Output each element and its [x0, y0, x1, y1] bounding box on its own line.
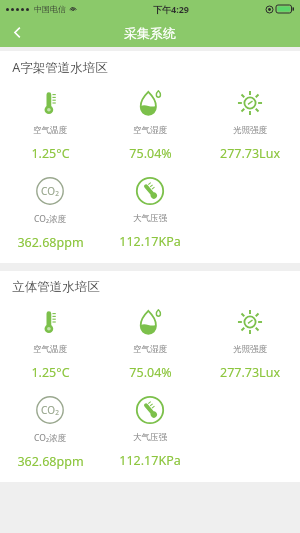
staticText: 空气湿度 [133, 344, 167, 355]
staticText: CO [41, 403, 55, 417]
staticText: 362.68ppm [17, 453, 84, 470]
staticText: 112.17KPa [119, 452, 181, 469]
staticText: 2 [55, 189, 59, 198]
staticText: 立体管道水培区 [12, 279, 100, 295]
button[interactable]: 空气温度 [0, 307, 100, 381]
button[interactable]: 空气湿度 [100, 88, 200, 162]
staticText: CO₂浓度 [34, 213, 66, 225]
staticText: 2 [55, 408, 59, 417]
button[interactable]: 大气压强 [100, 176, 200, 250]
staticText: 大气压强 [133, 213, 167, 224]
staticText: 采集系统 [124, 25, 176, 41]
button[interactable]: 空气温度 [0, 88, 100, 162]
button[interactable]: 空气湿度 [100, 307, 200, 381]
button[interactable]: CO [0, 176, 100, 251]
button[interactable]: Back [0, 18, 34, 47]
button[interactable]: 光照强度 [200, 307, 300, 381]
staticText: 空气温度 [33, 344, 67, 355]
staticText: 75.04% [129, 364, 172, 381]
staticText: 362.68ppm [17, 234, 84, 251]
staticText: CO [41, 184, 55, 198]
staticText: A字架管道水培区 [12, 59, 108, 76]
staticText: 光照强度 [233, 344, 267, 355]
button[interactable]: CO [0, 395, 100, 470]
staticText: 空气湿度 [133, 125, 167, 136]
staticText: 75.04% [129, 145, 172, 162]
staticText: 112.17KPa [119, 233, 181, 250]
staticText: 空气温度 [33, 125, 67, 136]
staticText: CO₂浓度 [34, 432, 66, 444]
staticText: 1.25°C [31, 364, 70, 381]
staticText: 下午4:29 [153, 3, 189, 15]
staticText: 光照强度 [233, 125, 267, 136]
staticText: 277.73Lux [220, 364, 280, 381]
staticText: 中国电信 [34, 4, 66, 14]
staticText: 大气压强 [133, 432, 167, 443]
button[interactable]: 光照强度 [200, 88, 300, 162]
staticText: 277.73Lux [220, 145, 280, 162]
staticText: 1.25°C [31, 145, 70, 162]
button[interactable]: 大气压强 [100, 395, 200, 469]
